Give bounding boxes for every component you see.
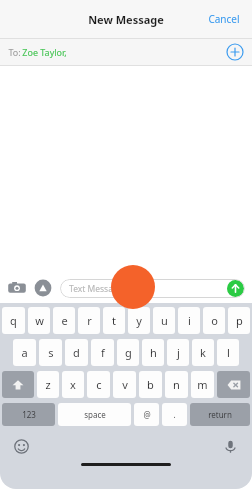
- staticText: 123: [22, 409, 36, 420]
- staticText: p: [236, 313, 243, 328]
- button[interactable]: b: [139, 371, 162, 398]
- staticText: v: [122, 377, 128, 392]
- staticText: w: [35, 313, 44, 328]
- button[interactable]: Emoji: [14, 439, 29, 454]
- button[interactable]: .: [162, 403, 187, 426]
- staticText: New Message: [88, 12, 164, 27]
- button[interactable]: y: [128, 307, 150, 334]
- button[interactable]: i: [178, 307, 200, 334]
- staticText: q: [10, 313, 17, 328]
- button[interactable]: o: [203, 307, 225, 334]
- staticText: e: [61, 313, 68, 328]
- button[interactable]: r: [78, 307, 100, 334]
- button[interactable]: e: [53, 307, 75, 334]
- button[interactable]: x: [62, 371, 84, 398]
- button[interactable]: 123: [2, 403, 55, 426]
- button[interactable]: q: [2, 307, 25, 334]
- staticText: u: [161, 313, 168, 328]
- button[interactable]: s: [39, 339, 62, 366]
- staticText: space: [84, 409, 106, 420]
- staticText: return: [208, 409, 232, 420]
- staticText: Zoe Taylor,: [22, 46, 67, 58]
- button[interactable]: To:: [0, 39, 252, 65]
- staticText: f: [101, 345, 105, 360]
- staticText: @: [143, 409, 151, 420]
- button[interactable]: u: [153, 307, 175, 334]
- button[interactable]: Backspace: [217, 371, 250, 398]
- button[interactable]: n: [165, 371, 188, 398]
- button[interactable]: p: [228, 307, 250, 334]
- staticText: h: [150, 345, 157, 360]
- button[interactable]: Apps: [33, 278, 53, 298]
- button[interactable]: l: [217, 339, 239, 366]
- button[interactable]: v: [113, 371, 136, 398]
- button[interactable]: Text Message: [60, 279, 245, 298]
- button[interactable]: return: [190, 403, 250, 426]
- button[interactable]: a: [13, 339, 36, 366]
- button[interactable]: d: [65, 339, 88, 366]
- staticText: o: [211, 313, 218, 328]
- staticText: n: [173, 377, 180, 392]
- button[interactable]: Dictate: [223, 439, 238, 454]
- button[interactable]: t: [103, 307, 125, 334]
- button[interactable]: Camera: [7, 278, 27, 298]
- button[interactable]: Cancel: [204, 8, 244, 30]
- button[interactable]: Shift: [2, 371, 34, 398]
- button[interactable]: k: [192, 339, 214, 366]
- button[interactable]: z: [37, 371, 59, 398]
- staticText: i: [188, 313, 191, 328]
- staticText: Cancel: [208, 12, 240, 26]
- button[interactable]: Send: [227, 280, 244, 297]
- staticText: To:: [7, 46, 22, 58]
- staticText: k: [200, 345, 206, 360]
- staticText: s: [48, 345, 54, 360]
- button[interactable]: c: [87, 371, 110, 398]
- button[interactable]: Add contact: [226, 43, 244, 61]
- button[interactable]: m: [191, 371, 214, 398]
- staticText: b: [147, 377, 154, 392]
- staticText: g: [125, 345, 132, 360]
- staticText: x: [70, 377, 76, 392]
- staticText: c: [96, 377, 102, 392]
- button[interactable]: space: [58, 403, 131, 426]
- staticText: y: [136, 313, 142, 328]
- staticText: d: [73, 345, 80, 360]
- button[interactable]: @: [134, 403, 159, 426]
- button[interactable]: w: [28, 307, 50, 334]
- staticText: l: [227, 345, 230, 360]
- button[interactable]: h: [142, 339, 164, 366]
- staticText: Text Message: [69, 283, 123, 295]
- button[interactable]: f: [91, 339, 114, 366]
- button[interactable]: j: [167, 339, 189, 366]
- staticText: m: [197, 377, 208, 392]
- staticText: r: [87, 313, 92, 328]
- staticText: .: [173, 409, 176, 420]
- staticText: a: [21, 345, 28, 360]
- staticText: t: [112, 313, 116, 328]
- staticText: z: [45, 377, 51, 392]
- staticText: j: [177, 345, 180, 360]
- button[interactable]: g: [117, 339, 139, 366]
